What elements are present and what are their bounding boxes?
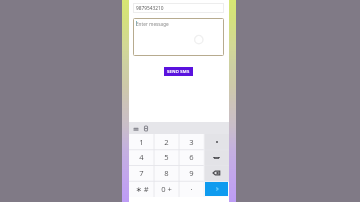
button[interactable]: 3 xyxy=(179,134,204,149)
button[interactable]: 2 xyxy=(154,134,179,149)
button[interactable]: · xyxy=(179,181,204,197)
staticText: 9879543210 xyxy=(136,5,164,12)
staticText: 2 xyxy=(164,137,169,147)
button[interactable]: SEND SMS xyxy=(164,67,193,76)
button[interactable]: 6 xyxy=(179,149,204,165)
button[interactable]: Clipboard xyxy=(144,126,148,131)
staticText: · xyxy=(190,184,193,194)
button[interactable]: Enter message xyxy=(133,18,224,56)
staticText: 3 xyxy=(189,137,194,147)
staticText: 0 + xyxy=(161,184,172,194)
staticText: 8 xyxy=(164,168,169,178)
staticText: ∗ # xyxy=(135,184,149,194)
button[interactable]: Backspace xyxy=(204,165,229,181)
staticText: 4 xyxy=(139,152,144,162)
staticText: 1 xyxy=(139,137,144,147)
button[interactable]: 1 xyxy=(129,134,154,149)
staticText: 6 xyxy=(189,152,194,162)
button[interactable]: 9879543210 xyxy=(133,3,224,13)
button[interactable]: Dash xyxy=(204,134,229,149)
button[interactable]: ∗ # xyxy=(129,181,154,197)
button[interactable]: Keyboard settings xyxy=(134,127,138,131)
staticText: 5 xyxy=(164,152,169,162)
button[interactable]: 8 xyxy=(154,165,179,181)
staticText: SEND SMS xyxy=(167,69,190,75)
staticText: 7 xyxy=(139,168,144,178)
button[interactable]: 9 xyxy=(179,165,204,181)
button[interactable]: 0 + xyxy=(154,181,179,197)
button[interactable]: 7 xyxy=(129,165,154,181)
staticText: Enter message xyxy=(136,21,169,27)
staticText: 9 xyxy=(189,168,194,178)
button[interactable]: 5 xyxy=(154,149,179,165)
button[interactable]: Space xyxy=(204,149,229,165)
button[interactable]: 4 xyxy=(129,149,154,165)
button[interactable]: Send xyxy=(204,181,229,197)
